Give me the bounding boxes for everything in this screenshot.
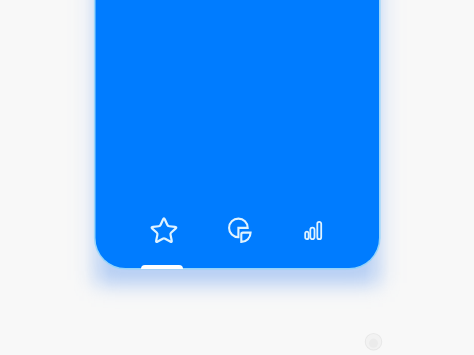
button[interactable]: Statistics (202, 204, 278, 262)
button[interactable]: Reports (278, 204, 354, 262)
button[interactable]: Selected tab indicator (141, 265, 183, 269)
button[interactable]: Favorites (126, 204, 202, 262)
